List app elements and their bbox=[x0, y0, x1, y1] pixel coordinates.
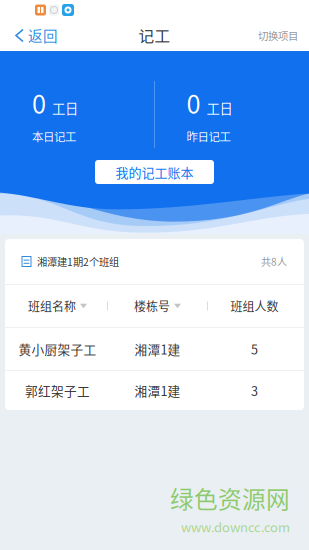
staticText: 我的记工账本 bbox=[115, 162, 193, 181]
staticText: 湘潭建1期2个班组 bbox=[37, 254, 119, 269]
staticText: 0 bbox=[32, 84, 46, 121]
staticText: 郭红架子工 bbox=[25, 381, 90, 400]
staticText: 记工 bbox=[138, 24, 170, 47]
staticText: 共8人 bbox=[261, 254, 287, 269]
staticText: 班组名称 bbox=[28, 297, 76, 315]
button[interactable]: 黄小厨架子工 bbox=[5, 328, 304, 370]
button[interactable]: 湘潭建1期2个班组 bbox=[5, 239, 304, 284]
staticText: 班组人数 bbox=[230, 297, 278, 315]
staticText: 3 bbox=[251, 381, 258, 400]
staticText: 湘潭1建 bbox=[134, 340, 180, 358]
staticText: 本日记工 bbox=[32, 128, 76, 145]
staticText: 切换项目 bbox=[258, 28, 298, 43]
staticText: www.downcc.com bbox=[181, 517, 290, 536]
button[interactable]: 郭红架子工 bbox=[5, 371, 304, 410]
staticText: 5 bbox=[251, 340, 258, 358]
staticText: 湘潭1建 bbox=[134, 381, 180, 400]
staticText: 绿色资源网 bbox=[170, 481, 290, 515]
staticText: 返回 bbox=[28, 25, 58, 46]
button[interactable]: 返回 bbox=[0, 20, 68, 51]
staticText: 工日 bbox=[206, 98, 232, 118]
staticText: 昨日记工 bbox=[186, 128, 230, 145]
staticText: 黄小厨架子工 bbox=[18, 340, 96, 358]
button[interactable]: 班组名称 bbox=[5, 285, 110, 327]
staticText: 楼栋号 bbox=[134, 297, 170, 315]
button[interactable]: 切换项目 bbox=[248, 20, 309, 51]
button[interactable]: 我的记工账本 bbox=[95, 160, 214, 184]
staticText: 工日 bbox=[52, 98, 78, 118]
button[interactable]: 楼栋号 bbox=[110, 285, 205, 327]
staticText: 0 bbox=[186, 84, 200, 121]
